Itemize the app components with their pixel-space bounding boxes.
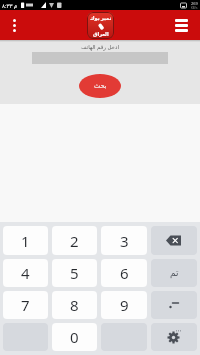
staticText: 6 bbox=[120, 263, 129, 283]
staticText: ادخل رقم الهاتف bbox=[81, 43, 119, 50]
staticText: KB/s bbox=[191, 6, 198, 10]
button[interactable]: 3 bbox=[101, 226, 147, 255]
button[interactable]: 8 bbox=[52, 291, 97, 319]
button[interactable]: نمبر بوك bbox=[87, 12, 114, 39]
button[interactable]: 0 bbox=[52, 323, 97, 351]
button[interactable]: 5 bbox=[52, 259, 97, 287]
staticText: 3 bbox=[120, 231, 129, 251]
button[interactable]: 6 bbox=[101, 259, 147, 287]
button[interactable]: 9 bbox=[101, 291, 147, 319]
staticText: 5 bbox=[70, 263, 79, 283]
staticText: 1 bbox=[21, 231, 30, 251]
staticText: 4 bbox=[21, 263, 30, 283]
staticText: 7 bbox=[21, 295, 30, 315]
staticText: 9 bbox=[120, 295, 129, 315]
staticText: تم bbox=[170, 268, 179, 278]
button[interactable] bbox=[151, 291, 197, 319]
button[interactable] bbox=[151, 226, 197, 255]
button[interactable]: تم bbox=[151, 259, 197, 287]
button[interactable]: 7 bbox=[3, 291, 48, 319]
button[interactable]: بحث bbox=[79, 74, 121, 98]
staticText: العراق bbox=[93, 31, 109, 37]
staticText: 8 bbox=[70, 295, 79, 315]
staticText: نمبر بوك bbox=[90, 15, 112, 22]
staticText: 2 bbox=[70, 231, 79, 251]
staticText: بحث bbox=[94, 82, 107, 90]
button[interactable]: 4 bbox=[3, 259, 48, 287]
button[interactable] bbox=[175, 19, 188, 32]
staticText: 0 bbox=[70, 327, 79, 347]
staticText: م ٨:٣٣ bbox=[2, 2, 18, 9]
button[interactable]: 1 bbox=[3, 226, 48, 255]
button[interactable] bbox=[13, 19, 16, 32]
button[interactable]: 2 bbox=[52, 226, 97, 255]
button[interactable] bbox=[151, 323, 197, 351]
staticText: 269 bbox=[191, 1, 198, 6]
